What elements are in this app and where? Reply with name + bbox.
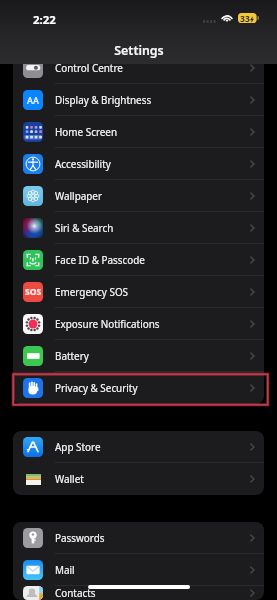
staticText: 2:22 <box>33 12 56 28</box>
button[interactable]: Wallet <box>13 463 264 495</box>
button[interactable]: Exposure Notifications <box>13 308 264 340</box>
staticText: Siri & Search <box>55 221 114 234</box>
staticText: Display & Brightness <box>55 93 152 106</box>
staticText: Battery <box>55 349 89 362</box>
staticText: Settings <box>114 42 164 59</box>
staticText: Wallet <box>55 472 84 485</box>
button[interactable]: Face ID & Passcode <box>13 244 264 276</box>
staticText: Control Centre <box>55 61 123 74</box>
button[interactable]: Privacy & Security <box>13 372 264 404</box>
staticText: AA <box>27 94 39 106</box>
staticText: Passwords <box>55 531 105 544</box>
staticText: Emergency SOS <box>55 285 129 298</box>
button[interactable]: Contacts <box>13 586 264 600</box>
staticText: Home Screen <box>55 125 118 138</box>
button[interactable]: Siri & Search <box>13 212 264 244</box>
staticText: Wallpaper <box>55 189 103 202</box>
staticText: Exposure Notifications <box>55 317 160 330</box>
staticText: Contacts <box>55 586 96 599</box>
button[interactable]: Mail <box>13 554 264 586</box>
button[interactable]: Passwords <box>13 522 264 554</box>
staticText: 33 <box>240 13 250 25</box>
button[interactable]: Battery <box>13 340 264 372</box>
staticText: Mail <box>55 563 75 576</box>
button[interactable]: Home Screen <box>13 116 264 148</box>
staticText: Face ID & Passcode <box>55 253 145 266</box>
button[interactable]: Accessibility <box>13 148 264 180</box>
staticText: Privacy & Security <box>55 381 138 394</box>
staticText: App Store <box>55 440 101 453</box>
button[interactable]: Control Centre <box>13 52 264 84</box>
button[interactable]: Wallpaper <box>13 180 264 212</box>
button[interactable]: SOS <box>13 276 264 308</box>
button[interactable]: App Store <box>13 431 264 463</box>
button[interactable]: AA <box>13 84 264 116</box>
staticText: Accessibility <box>55 157 111 170</box>
staticText: SOS <box>25 286 42 298</box>
